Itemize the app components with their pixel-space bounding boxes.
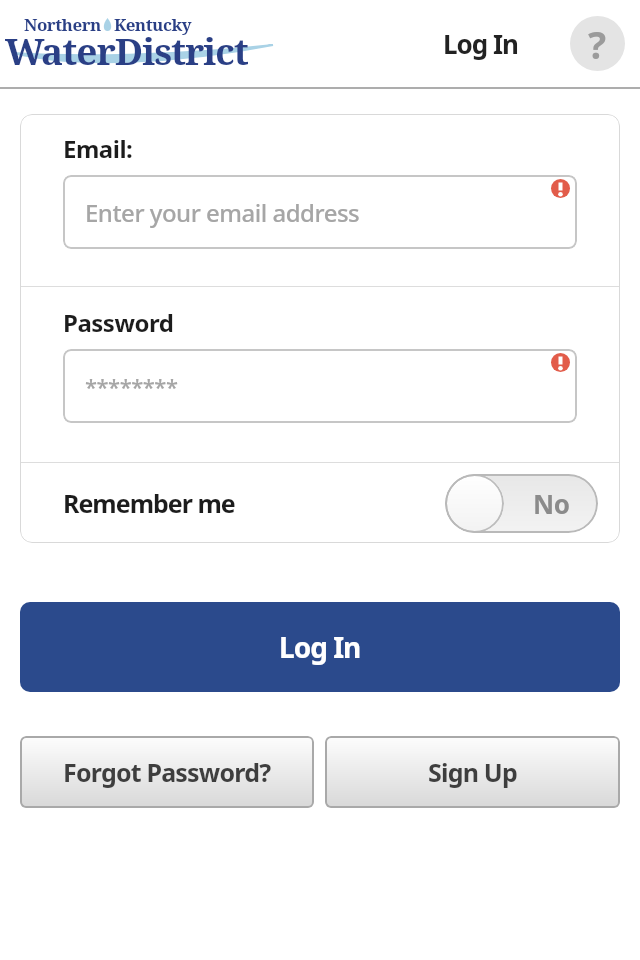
staticText: No <box>533 486 570 521</box>
button[interactable]: Sign Up <box>325 736 620 808</box>
staticText: Forgot Password? <box>63 755 271 789</box>
staticText: WaterDistrict <box>5 25 248 75</box>
button[interactable]: No <box>445 474 598 533</box>
staticText: Log In <box>443 26 518 61</box>
staticText: Email: <box>63 132 133 165</box>
staticText: Northern <box>24 13 101 36</box>
staticText: Log In <box>279 628 361 666</box>
staticText: ? <box>588 18 607 70</box>
staticText: ******** <box>85 371 178 401</box>
staticText: Remember me <box>63 486 235 520</box>
button[interactable]: ? <box>570 16 625 71</box>
button[interactable]: Forgot Password? <box>20 736 314 808</box>
staticText: Enter your email address <box>85 196 360 229</box>
button[interactable]: Log In <box>20 602 620 692</box>
button[interactable]: ******** <box>63 349 577 423</box>
button[interactable]: Enter your email address <box>63 175 577 249</box>
staticText: Kentucky <box>114 13 192 36</box>
staticText: Sign Up <box>428 755 517 789</box>
staticText: Password <box>63 306 174 339</box>
